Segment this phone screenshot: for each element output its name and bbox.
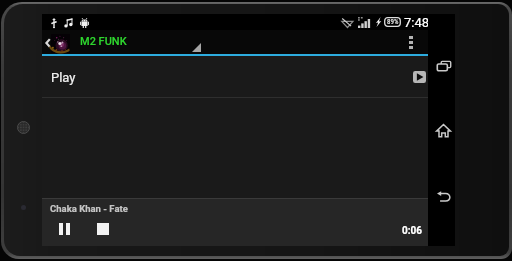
staticText: Chaka Khan - Fate	[50, 203, 128, 214]
button[interactable]: More options	[399, 30, 428, 54]
staticText: 89%	[387, 18, 399, 26]
staticText: 7:48	[404, 15, 430, 30]
button[interactable]: Play	[42, 56, 428, 97]
button[interactable]: Home	[428, 118, 455, 145]
staticText: 0:06	[402, 225, 423, 237]
button[interactable]: Pause	[57, 222, 71, 236]
button[interactable]: Back	[428, 182, 455, 209]
button[interactable]: Stop	[96, 222, 110, 236]
button[interactable]: Recent apps	[428, 52, 455, 79]
button[interactable]: Navigate up	[42, 30, 134, 54]
button[interactable]: Play	[413, 71, 426, 83]
staticText: M2 FUNK	[80, 35, 127, 48]
staticText: Play	[51, 70, 76, 85]
